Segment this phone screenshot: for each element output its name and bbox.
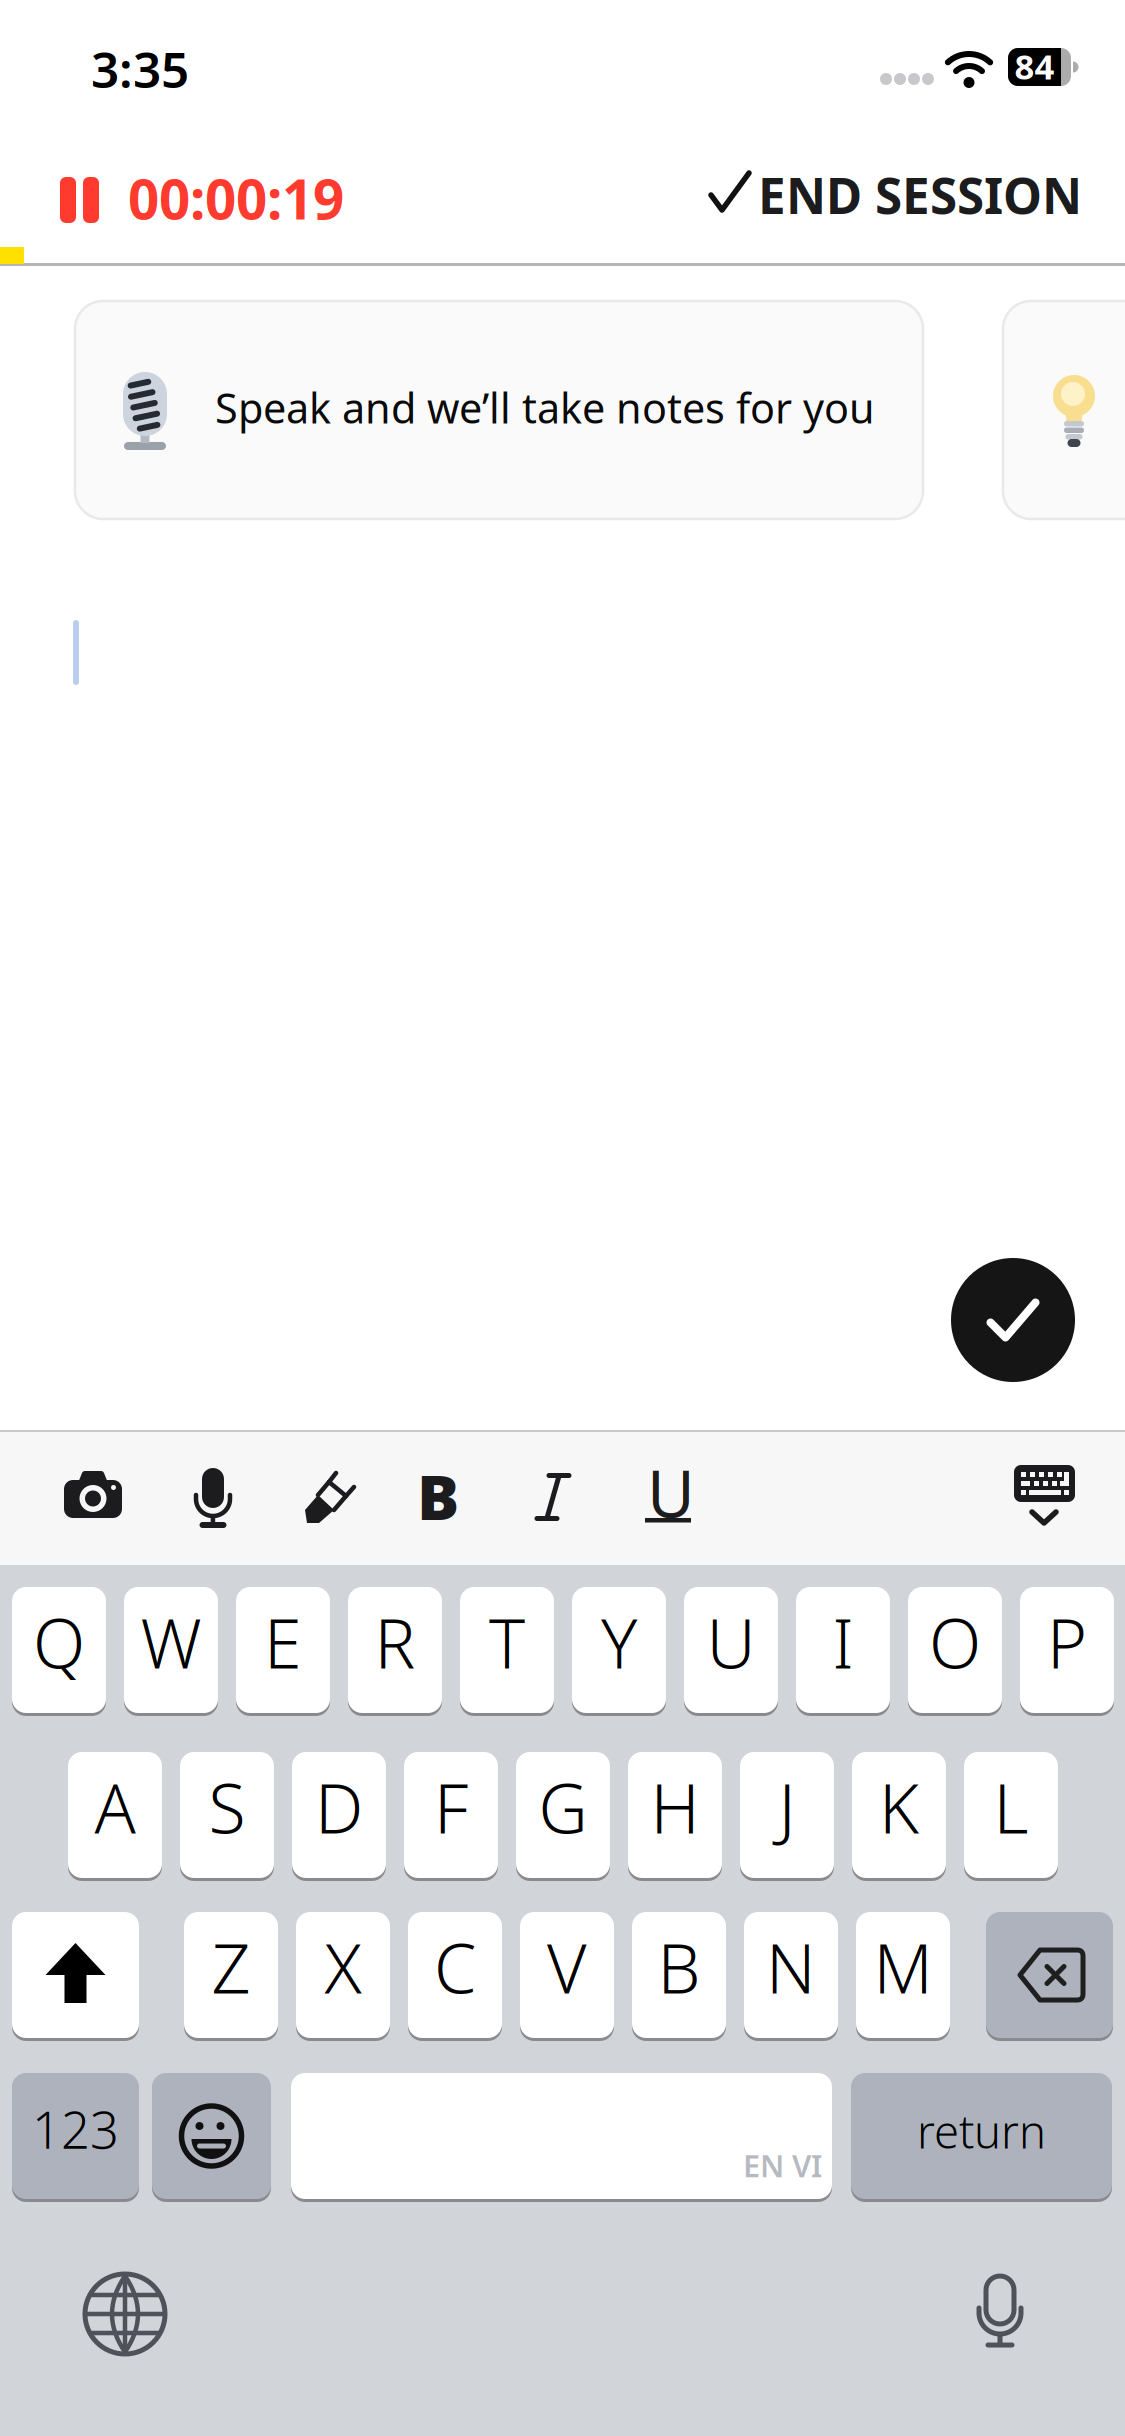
staticText: I [832, 1597, 853, 1687]
button[interactable]: Y [572, 1587, 666, 1713]
button[interactable]: K [852, 1752, 946, 1878]
staticText: J [778, 1762, 795, 1852]
button[interactable]: Return [851, 2073, 1112, 2199]
button[interactable]: O [908, 1587, 1002, 1713]
button[interactable]: Dictation [975, 2275, 1025, 2348]
staticText: Y [601, 1597, 637, 1687]
staticText: W [140, 1597, 201, 1687]
button[interactable]: Dictate [193, 1468, 233, 1528]
staticText: U [647, 1449, 695, 1536]
button[interactable]: Numbers [12, 2073, 139, 2199]
staticText: F [434, 1762, 468, 1852]
button[interactable]: M [856, 1912, 950, 2038]
staticText: A [94, 1762, 135, 1852]
button[interactable]: Shift [12, 1912, 139, 2038]
button[interactable]: Pause [60, 177, 99, 223]
button[interactable]: Delete [986, 1912, 1113, 2038]
staticText: M [873, 1922, 932, 2012]
button[interactable]: T [460, 1587, 554, 1713]
button[interactable]: Next keyboard [85, 2274, 165, 2354]
staticText: return [917, 2101, 1046, 2161]
button[interactable]: Idea suggestion [1003, 301, 1125, 519]
button[interactable]: X [296, 1912, 390, 2038]
button[interactable]: A [68, 1752, 162, 1878]
button[interactable]: P [1020, 1587, 1114, 1713]
button[interactable]: Camera [64, 1471, 122, 1518]
button[interactable]: Z [184, 1912, 278, 2038]
button[interactable]: V [520, 1912, 614, 2038]
staticText: P [1047, 1597, 1087, 1687]
button[interactable]: Done [951, 1258, 1075, 1382]
staticText: K [879, 1762, 919, 1852]
button[interactable]: G [516, 1752, 610, 1878]
staticText: X [324, 1922, 361, 2012]
staticText: D [315, 1762, 363, 1852]
staticText: O [929, 1597, 981, 1687]
button[interactable]: Speak and we’ll take notes for you [75, 301, 923, 519]
staticText: Q [33, 1597, 85, 1687]
staticText: E [264, 1597, 302, 1687]
button[interactable]: Highlight [304, 1472, 356, 1524]
staticText: L [993, 1762, 1028, 1852]
button[interactable]: Italic [536, 1473, 570, 1521]
button[interactable]: R [348, 1587, 442, 1713]
staticText: END SESSION [758, 162, 1082, 227]
staticText: T [489, 1597, 525, 1687]
button[interactable]: C [408, 1912, 502, 2038]
button[interactable]: J [740, 1752, 834, 1878]
staticText: B [657, 1922, 700, 2012]
button[interactable]: I [796, 1587, 890, 1713]
button[interactable]: END SESSION [708, 162, 1076, 218]
button[interactable]: Q [12, 1587, 106, 1713]
button[interactable]: Space [291, 2073, 832, 2199]
button[interactable]: U [684, 1587, 778, 1713]
staticText: S [208, 1762, 245, 1852]
staticText: 3:35 [91, 36, 189, 101]
staticText: 123 [32, 2095, 119, 2163]
button[interactable]: H [628, 1752, 722, 1878]
button[interactable]: S [180, 1752, 274, 1878]
staticText: G [538, 1762, 587, 1852]
button[interactable]: Emoji [152, 2073, 271, 2199]
staticText: Speak and we’ll take notes for you [215, 380, 875, 435]
button[interactable]: N [744, 1912, 838, 2038]
staticText: B [417, 1454, 459, 1537]
staticText: H [650, 1762, 699, 1852]
button[interactable]: Dismiss keyboard [1014, 1465, 1075, 1526]
staticText: R [374, 1597, 415, 1687]
button[interactable]: B [632, 1912, 726, 2038]
button[interactable]: Underline [645, 1449, 691, 1523]
staticText: 84 [1014, 43, 1054, 89]
staticText: C [434, 1922, 476, 2012]
staticText: N [766, 1922, 816, 2012]
staticText: EN VI [743, 2145, 822, 2186]
staticText: V [547, 1922, 587, 2012]
staticText: 00:00:19 [128, 162, 344, 235]
button[interactable]: D [292, 1752, 386, 1878]
button[interactable]: W [124, 1587, 218, 1713]
button[interactable]: F [404, 1752, 498, 1878]
staticText: U [706, 1597, 755, 1687]
button[interactable]: E [236, 1587, 330, 1713]
button[interactable]: L [964, 1752, 1058, 1878]
staticText: Z [211, 1922, 250, 2012]
button[interactable]: Bold [417, 1454, 459, 1537]
